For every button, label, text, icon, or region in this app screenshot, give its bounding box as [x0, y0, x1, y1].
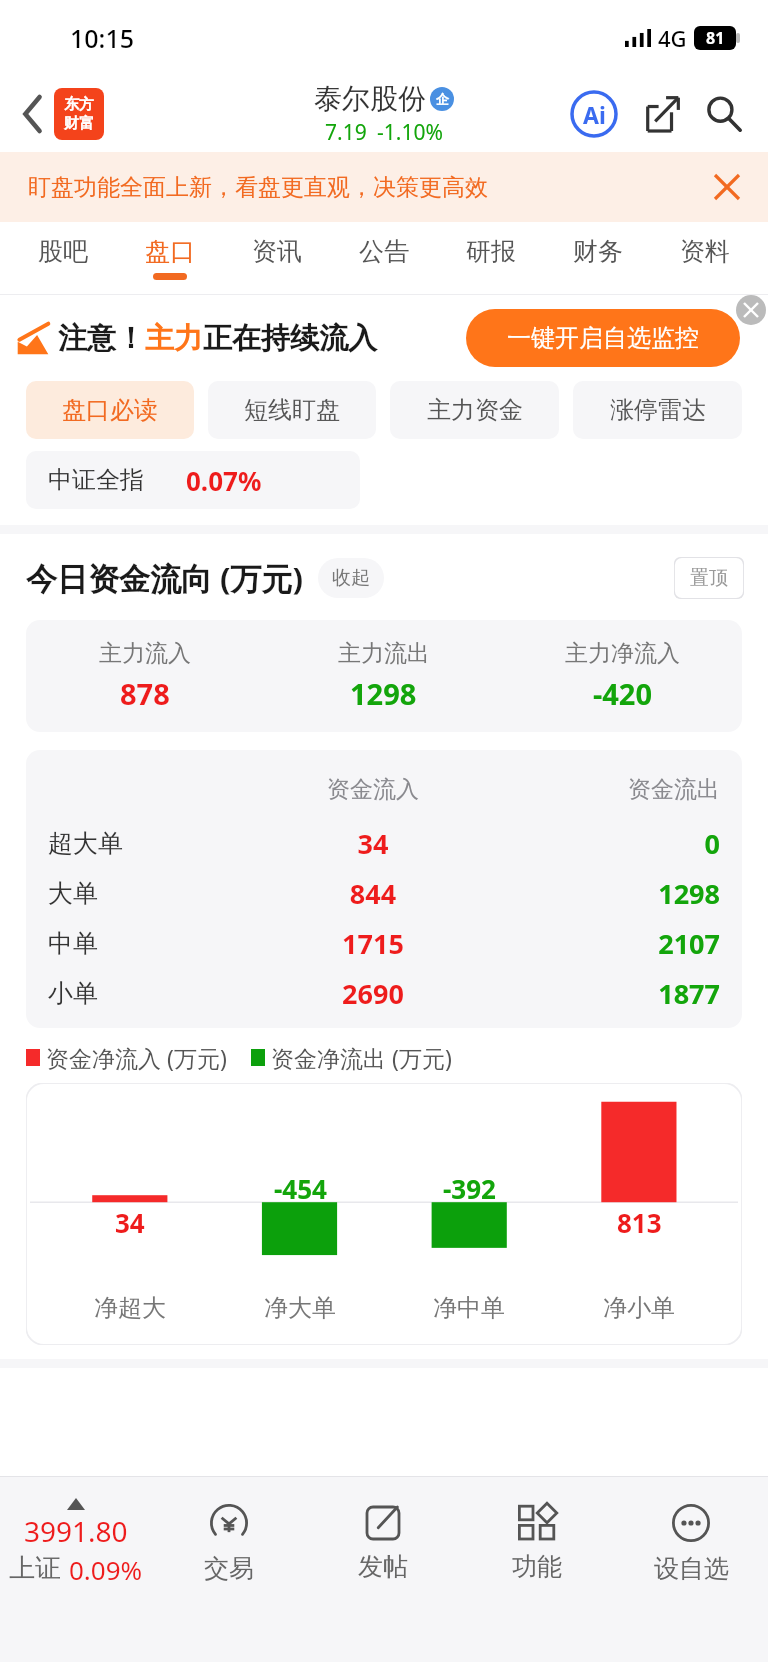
staticText: 收起 [332, 566, 370, 590]
staticText: 主力流出 [338, 639, 430, 668]
staticText: 中证全指 [48, 465, 144, 495]
staticText: 公告 [359, 236, 409, 267]
staticText: 1877 [496, 975, 720, 1012]
button[interactable]: 公告 [330, 222, 437, 294]
staticText: 交易 [204, 1553, 254, 1584]
staticText: 资讯 [252, 236, 302, 267]
staticText: 财务 [573, 236, 623, 267]
button[interactable]: 涨停雷达 [573, 381, 742, 439]
staticText: 主力资金 [427, 395, 523, 425]
staticText: 盘口必读 [62, 395, 158, 425]
staticText: 功能 [512, 1551, 562, 1582]
staticText: -420 [593, 674, 653, 713]
staticText: 净大单 [264, 1293, 336, 1323]
staticText: 1715 [250, 925, 496, 962]
button[interactable]: Search [700, 90, 748, 138]
staticText: 涨停雷达 [610, 395, 706, 425]
button[interactable]: 功能 [460, 1476, 614, 1608]
staticText: 资金净流入 (万元) [46, 1042, 227, 1073]
staticText: 844 [250, 875, 496, 912]
button[interactable]: 资料 [651, 222, 758, 294]
staticText: 股吧 [38, 236, 88, 267]
button[interactable]: 研报 [437, 222, 544, 294]
staticText: 一键开启自选监控 [507, 323, 699, 353]
button[interactable]: Close ad [736, 295, 766, 325]
button[interactable]: 盘口必读 [26, 381, 194, 439]
staticText: 资料 [680, 236, 730, 267]
staticText: 企 [436, 91, 449, 107]
button[interactable]: Share [638, 90, 686, 138]
staticText: 中单 [48, 928, 250, 959]
staticText: 10:15 [70, 21, 135, 55]
button[interactable]: 发帖 [306, 1476, 460, 1608]
staticText: 上证 [9, 1552, 61, 1585]
button[interactable]: 置顶 [674, 557, 744, 599]
staticText: 置顶 [690, 566, 728, 590]
button[interactable]: Close banner [704, 164, 750, 210]
staticText: 0 [496, 825, 720, 862]
staticText: -392 [443, 1171, 496, 1206]
staticText: 净超大 [94, 1293, 166, 1323]
staticText: 财富 [64, 114, 94, 133]
staticText: 净中单 [433, 1293, 505, 1323]
staticText: -454 [274, 1171, 327, 1206]
staticText: 大单 [48, 878, 250, 909]
button[interactable]: 盘口 [116, 222, 223, 294]
button[interactable]: 主力资金 [390, 381, 559, 439]
staticText: -1.10% [377, 118, 443, 147]
staticText: 7.19 [325, 118, 367, 147]
button[interactable]: 财务 [544, 222, 651, 294]
staticText: 注意！ [58, 320, 145, 357]
button[interactable]: 3991.80 [0, 1476, 152, 1608]
button[interactable]: 股吧 [10, 222, 116, 294]
staticText: 今日资金流向 (万元) [26, 557, 304, 599]
staticText: 0.07% [186, 463, 262, 498]
staticText: 2690 [250, 975, 496, 1012]
staticText: 1298 [496, 875, 720, 912]
staticText: 短线盯盘 [244, 395, 340, 425]
staticText: 超大单 [48, 828, 250, 859]
staticText: 2107 [496, 925, 720, 962]
staticText: 发帖 [358, 1551, 408, 1582]
staticText: 研报 [466, 236, 516, 267]
staticText: 泰尔股份 [314, 81, 426, 116]
staticText: 0.09% [69, 1552, 143, 1587]
button[interactable]: 交易 [152, 1476, 306, 1608]
staticText: 资金净流出 (万元) [271, 1042, 452, 1073]
staticText: 设自选 [654, 1553, 729, 1584]
button[interactable]: 收起 [318, 558, 384, 598]
staticText: 主力 [145, 320, 203, 357]
button[interactable]: 一键开启自选监控 [466, 309, 740, 367]
staticText: 主力流入 [99, 639, 191, 668]
staticText: 878 [120, 674, 170, 713]
staticText: 4G [658, 23, 687, 53]
button[interactable]: 资讯 [223, 222, 330, 294]
staticText: 34 [250, 825, 496, 862]
staticText: 盯盘功能全面上新，看盘更直观，决策更高效 [28, 173, 488, 202]
staticText: 资金流入 [250, 775, 496, 804]
staticText: 小单 [48, 978, 250, 1009]
staticText: 81 [706, 27, 725, 49]
button[interactable]: 设自选 [614, 1476, 768, 1608]
staticText: 1298 [350, 674, 417, 713]
staticText: 主力净流入 [565, 639, 680, 668]
staticText: 正在持续流入 [203, 320, 377, 357]
button[interactable]: 短线盯盘 [208, 381, 376, 439]
button[interactable]: Back [16, 88, 110, 140]
staticText: 34 [115, 1205, 145, 1240]
staticText: Ai [583, 99, 606, 130]
staticText: 资金流出 [496, 775, 720, 804]
staticText: 净小单 [603, 1293, 675, 1323]
button[interactable]: 中证全指 [26, 451, 360, 509]
staticText: 东方 [64, 95, 94, 114]
staticText: 3991.80 [24, 1512, 128, 1550]
staticText: 盘口 [145, 236, 195, 267]
staticText: 813 [617, 1205, 662, 1240]
button[interactable]: AI assistant [568, 88, 620, 140]
